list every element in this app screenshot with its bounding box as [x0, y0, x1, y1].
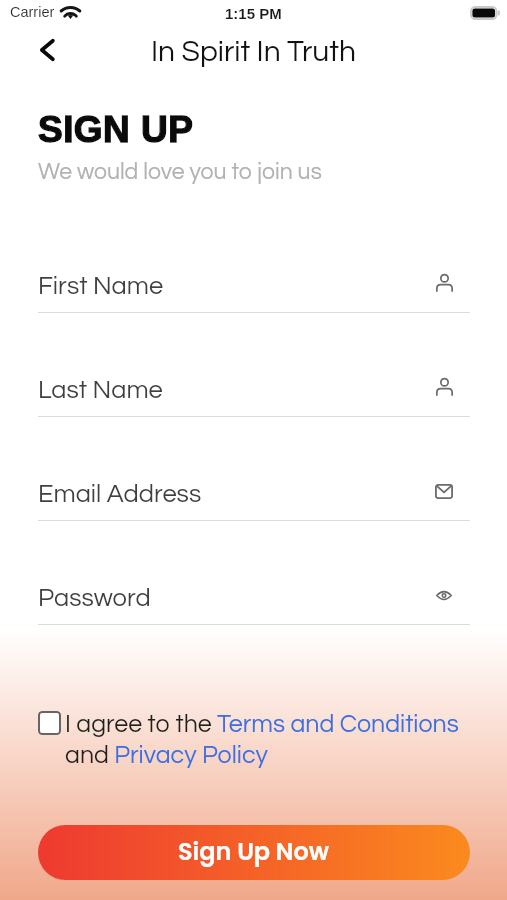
staticText: Sign Up Now — [178, 835, 330, 869]
staticText: In Spirit In Truth — [151, 36, 357, 67]
button[interactable]: Agree to terms — [38, 711, 61, 735]
button[interactable]: First Name — [38, 268, 470, 313]
staticText: Password — [38, 585, 151, 611]
button[interactable]: Password — [38, 580, 470, 625]
button[interactable]: Sign Up Now — [38, 825, 470, 880]
button[interactable]: Last Name — [38, 372, 470, 417]
staticText: SIGN UP — [38, 109, 194, 150]
button[interactable]: Back — [25, 28, 69, 72]
staticText: SIGN UP — [38, 109, 194, 150]
staticText: I agree to the Terms and Conditions and … — [65, 711, 471, 768]
button[interactable]: Email Address — [38, 476, 470, 521]
staticText: Carrier — [10, 4, 55, 20]
staticText: Last Name — [38, 377, 163, 403]
staticText: We would love you to join us — [38, 160, 322, 184]
staticText: First Name — [38, 273, 164, 299]
staticText: Email Address — [38, 481, 202, 507]
staticText: 1:15 PM — [225, 5, 282, 22]
